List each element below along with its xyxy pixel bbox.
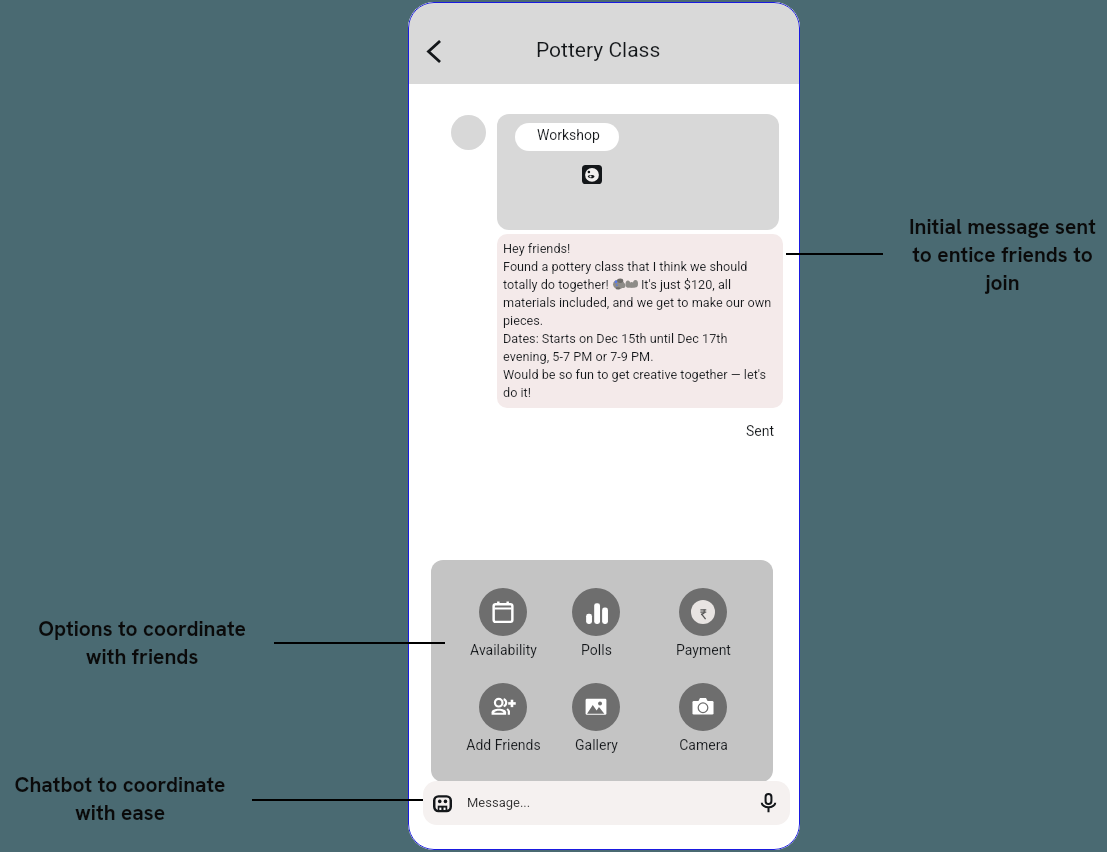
staticText: Pottery Class — [536, 38, 661, 63]
button[interactable]: Payment — [653, 588, 753, 658]
staticText: Options to coordinate with friends — [28, 615, 256, 671]
staticText: Chatbot to coordinate with ease — [6, 771, 234, 827]
button[interactable]: Polls — [546, 588, 646, 658]
staticText: Camera — [679, 737, 728, 753]
staticText: Gallery — [575, 737, 618, 753]
button[interactable]: Workshop — [515, 123, 619, 151]
staticText: Add Friends — [466, 737, 541, 753]
button[interactable]: Voice input — [752, 787, 784, 819]
staticText: Payment — [676, 642, 731, 658]
button[interactable]: Back — [411, 29, 455, 73]
button[interactable]: Camera — [653, 683, 753, 753]
button[interactable]: Message... — [423, 781, 790, 825]
staticText: Message... — [467, 795, 531, 810]
button[interactable]: Add Friends — [453, 683, 553, 753]
button[interactable]: Availability — [453, 588, 553, 658]
staticText: Initial message sent to entice friends t… — [890, 213, 1107, 297]
staticText: Polls — [581, 642, 612, 658]
staticText: Workshop — [537, 127, 600, 143]
button[interactable]: Gallery — [546, 683, 646, 753]
staticText: Hey friends! Found a pottery class that … — [503, 241, 772, 400]
staticText: Sent — [746, 423, 775, 439]
staticText: Availability — [470, 642, 537, 658]
